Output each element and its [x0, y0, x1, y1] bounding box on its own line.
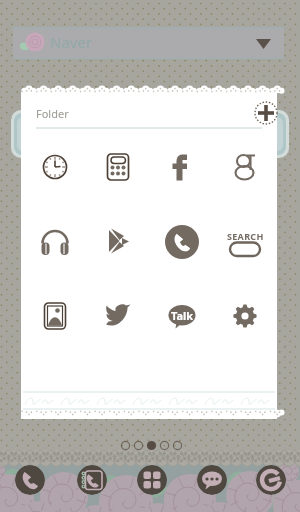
button[interactable]: Phone — [159, 219, 205, 265]
button[interactable]: Page 1 — [121, 441, 130, 450]
button[interactable]: Phone — [15, 465, 45, 495]
staticText: Naver — [50, 32, 93, 52]
button[interactable]: Page 2 — [134, 441, 143, 450]
staticText: SEARCH — [227, 230, 264, 242]
button[interactable]: Contacts — [77, 465, 107, 495]
button[interactable]: Music — [32, 219, 78, 265]
button[interactable]: Naver search — [13, 27, 284, 59]
button[interactable]: Gallery — [32, 293, 78, 339]
button[interactable]: Page 5 — [173, 441, 182, 450]
button[interactable]: Clock — [32, 144, 78, 190]
button[interactable]: Settings — [222, 293, 268, 339]
button[interactable]: Browser — [256, 465, 286, 495]
button[interactable]: Messages — [197, 465, 227, 495]
button[interactable]: Add app — [253, 100, 279, 126]
button[interactable]: Play Store — [95, 219, 141, 265]
button[interactable]: Twitter — [95, 293, 141, 339]
button[interactable]: Facebook — [159, 144, 205, 190]
staticText: Talk — [171, 308, 194, 323]
button[interactable]: SEARCH — [222, 219, 268, 265]
button[interactable]: Apps — [137, 465, 167, 495]
button[interactable]: Page 3 — [147, 441, 156, 450]
button[interactable]: Page 4 — [160, 441, 169, 450]
staticText: Folder — [36, 106, 69, 121]
button[interactable]: Google — [222, 144, 268, 190]
button[interactable]: Calculator — [95, 144, 141, 190]
button[interactable]: KakaoTalk — [159, 293, 205, 339]
